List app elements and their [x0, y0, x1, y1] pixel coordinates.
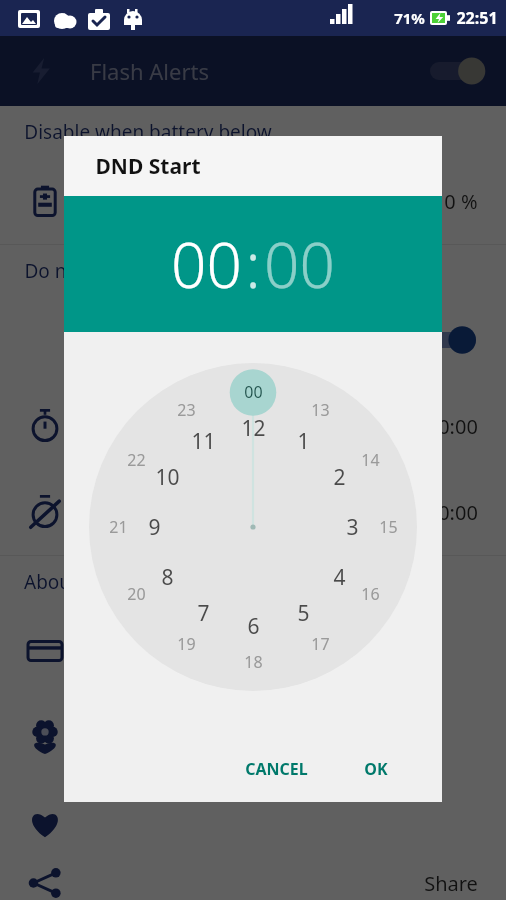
button[interactable]: 0:00: [0, 469, 506, 555]
staticText: 11: [191, 427, 216, 456]
staticText: 00: [171, 222, 242, 306]
button[interactable]: [0, 608, 506, 694]
staticText: 22: [127, 449, 146, 471]
button[interactable]: Share: [0, 866, 506, 900]
staticText: Disable when battery below: [24, 119, 272, 145]
staticText: 18: [244, 651, 263, 673]
staticText: 7: [197, 599, 210, 628]
staticText: 14: [361, 449, 380, 471]
staticText: :: [245, 222, 261, 306]
button[interactable]: [0, 780, 506, 866]
staticText: 8: [161, 563, 174, 592]
staticText: OK: [364, 758, 388, 780]
staticText: 20: [127, 583, 146, 605]
staticText: CANCEL: [245, 758, 308, 780]
staticText: 4: [333, 563, 346, 592]
staticText: 19: [177, 633, 196, 655]
staticText: 6: [247, 612, 260, 641]
staticText: 2: [333, 463, 346, 492]
staticText: 71%: [394, 8, 425, 28]
staticText: 5: [297, 599, 310, 628]
staticText: 21: [109, 516, 128, 538]
button[interactable]: 0:00: [0, 383, 506, 469]
staticText: 23: [177, 399, 196, 421]
staticText: 22:51: [456, 7, 498, 29]
staticText: 3: [346, 513, 359, 542]
staticText: Flash Alerts: [90, 56, 209, 86]
staticText: 0 %: [444, 188, 478, 215]
button[interactable]: 0 %: [0, 158, 506, 244]
staticText: 13: [311, 399, 330, 421]
button[interactable]: [0, 694, 506, 780]
staticText: 17: [311, 633, 330, 655]
button[interactable]: Flash alerts toggle: [426, 54, 486, 88]
staticText: 00: [244, 381, 263, 403]
staticText: Share: [424, 870, 478, 897]
staticText: 0:00: [438, 413, 478, 440]
staticText: Do not disturb: [24, 258, 154, 284]
button[interactable]: 00: [64, 196, 442, 332]
staticText: DND Start: [95, 152, 201, 181]
button[interactable]: CANCEL: [235, 750, 318, 788]
button[interactable]: [0, 297, 506, 383]
staticText: 0:00: [438, 499, 478, 526]
staticText: 15: [379, 516, 398, 538]
staticText: 12: [241, 414, 266, 443]
staticText: About: [24, 569, 78, 595]
staticText: 10: [155, 463, 180, 492]
staticText: 16: [361, 583, 380, 605]
staticText: 1: [297, 427, 310, 456]
button[interactable]: OK: [354, 750, 398, 788]
staticText: 9: [148, 513, 161, 542]
button[interactable]: Select hour: [89, 363, 417, 691]
staticText: 00: [264, 222, 335, 306]
